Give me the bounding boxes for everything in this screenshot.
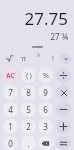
- button[interactable]: .: [21, 136, 36, 150]
- button[interactable]: Minus: [56, 102, 71, 117]
- button[interactable]: 5: [21, 102, 36, 117]
- staticText: AC: [6, 71, 15, 80]
- staticText: 5: [26, 104, 31, 115]
- button[interactable]: More functions: [60, 53, 71, 64]
- button[interactable]: Plus: [56, 119, 71, 134]
- staticText: 6: [43, 104, 48, 115]
- button[interactable]: 2: [21, 119, 36, 134]
- staticText: ( ): [26, 71, 32, 80]
- staticText: π: [21, 54, 26, 64]
- button[interactable]: Divide: [56, 68, 71, 83]
- button[interactable]: %: [38, 68, 53, 83]
- button[interactable]: 6: [38, 102, 53, 117]
- button[interactable]: 8: [21, 85, 36, 100]
- button[interactable]: 1: [3, 119, 18, 134]
- staticText: 27 ¾: [50, 31, 68, 42]
- staticText: 8: [26, 87, 31, 98]
- button[interactable]: Square root: [3, 52, 16, 65]
- staticText: !: [52, 54, 54, 64]
- staticText: 7: [8, 87, 13, 98]
- button[interactable]: 0: [3, 136, 18, 150]
- staticText: 4: [8, 104, 13, 115]
- staticText: 1: [8, 121, 13, 132]
- staticText: .: [27, 138, 30, 149]
- button[interactable]: ^: [32, 52, 45, 65]
- button[interactable]: 7: [3, 85, 18, 100]
- button[interactable]: 9: [38, 85, 53, 100]
- button[interactable]: π: [17, 52, 30, 65]
- button[interactable]: !: [46, 52, 59, 65]
- button[interactable]: AC: [3, 68, 18, 83]
- button[interactable]: ( ): [21, 68, 36, 83]
- button[interactable]: 3: [38, 119, 53, 134]
- staticText: %: [43, 71, 49, 81]
- button[interactable]: Backspace: [38, 136, 53, 150]
- staticText: 0: [8, 138, 13, 149]
- staticText: 9: [43, 87, 48, 98]
- button[interactable]: Equals: [56, 136, 71, 150]
- staticText: 3: [43, 121, 48, 132]
- button[interactable]: [32, 46, 43, 48]
- button[interactable]: 4: [3, 102, 18, 117]
- staticText: 27.75: [24, 7, 68, 30]
- staticText: ^: [36, 52, 41, 61]
- staticText: 2: [26, 121, 31, 132]
- button[interactable]: Multiply: [56, 85, 71, 100]
